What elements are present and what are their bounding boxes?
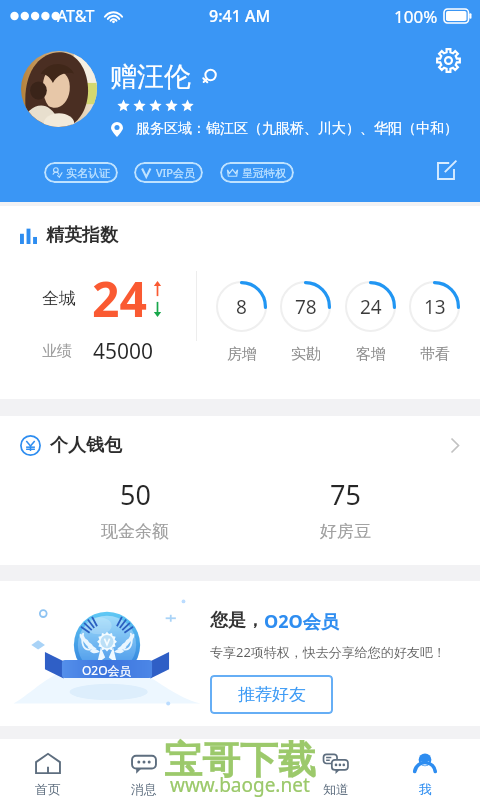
staticText: O2O会员: [264, 609, 339, 634]
button[interactable]: 8: [216, 281, 267, 364]
staticText: 专享22项特权，快去分享给您的好友吧！: [210, 643, 446, 661]
staticText: O2O会员: [82, 662, 132, 678]
button[interactable]: 13: [409, 281, 460, 364]
staticText: 100%: [394, 5, 438, 28]
staticText: 您是，: [210, 609, 264, 632]
staticText: 现金余额: [101, 521, 169, 542]
button[interactable]: 消息: [96, 739, 192, 800]
button[interactable]: 实名认证: [44, 162, 118, 183]
staticText: 8: [236, 294, 247, 320]
staticText: 13: [424, 294, 446, 320]
staticText: 78: [295, 294, 317, 320]
button[interactable]: 24: [345, 281, 396, 364]
staticText: 服务区域：锦江区（九眼桥、川大）、华阳（中和）: [136, 120, 458, 138]
staticText: 实勘: [291, 345, 321, 364]
staticText: 带看: [420, 345, 450, 364]
staticText: VIP会员: [156, 165, 195, 180]
staticText: 好房豆: [320, 521, 371, 542]
staticText: 75: [330, 476, 361, 513]
staticText: 首页: [35, 781, 61, 797]
button[interactable]: 我: [384, 739, 466, 800]
staticText: 知道: [323, 781, 349, 797]
button[interactable]: 皇冠特权: [220, 162, 294, 183]
staticText: 房增: [227, 345, 257, 364]
button[interactable]: 个人钱包: [0, 416, 480, 565]
button[interactable]: 首页: [0, 739, 96, 800]
staticText: 9:41 AM: [209, 5, 271, 27]
staticText: 客增: [356, 345, 386, 364]
staticText: 精英指数: [46, 224, 118, 247]
button[interactable]: Settings: [433, 45, 463, 75]
staticText: 45000: [93, 337, 154, 366]
staticText: 24: [360, 294, 382, 320]
staticText: 全城: [42, 288, 76, 309]
staticText: 个人钱包: [50, 434, 122, 457]
button[interactable]: Avatar: [21, 51, 97, 127]
staticText: 宝哥下载: [164, 736, 316, 784]
staticText: www.baoge.net: [170, 772, 310, 798]
staticText: 我: [419, 781, 432, 797]
button[interactable]: 推荐好友: [210, 675, 333, 714]
staticText: 推荐好友: [238, 684, 306, 705]
staticText: AT&T: [57, 5, 95, 27]
staticText: 业绩: [42, 342, 72, 361]
staticText: 24: [92, 266, 147, 331]
button[interactable]: 知道: [288, 739, 384, 800]
staticText: 50: [120, 476, 151, 513]
button[interactable]: VIP会员: [134, 162, 203, 183]
staticText: 消息: [131, 781, 157, 797]
button[interactable]: 78: [280, 281, 331, 364]
staticText: 赠汪伦: [110, 60, 191, 94]
button[interactable]: Edit profile: [436, 161, 456, 181]
staticText: 实名认证: [66, 166, 110, 180]
staticText: 皇冠特权: [242, 166, 286, 180]
button[interactable]: Gender: [199, 67, 219, 87]
